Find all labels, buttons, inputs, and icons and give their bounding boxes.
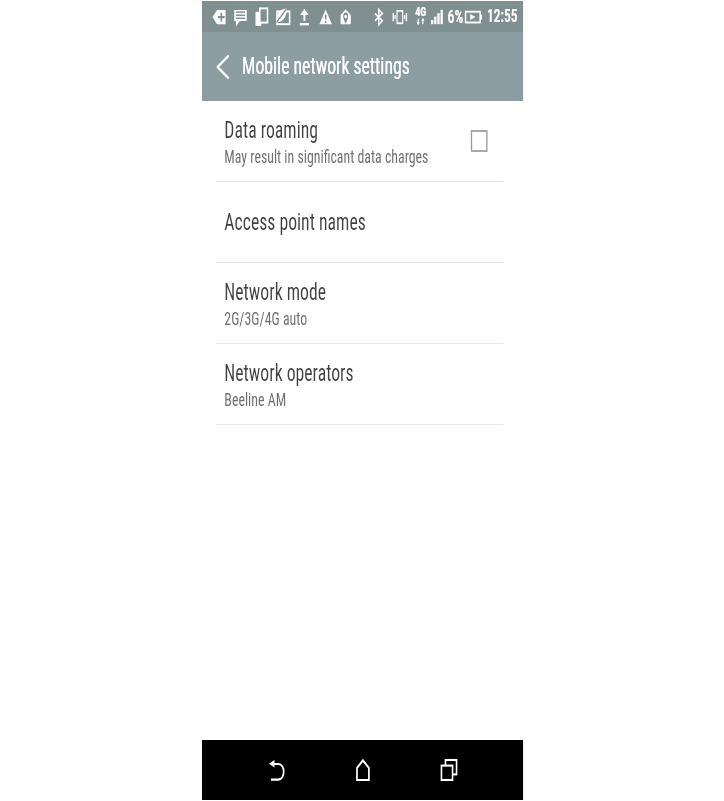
staticText: Data roaming <box>224 117 318 144</box>
button[interactable]: Home <box>320 740 406 800</box>
staticText: 6% <box>448 6 464 27</box>
button[interactable]: Back <box>234 740 320 800</box>
staticText: 12:55 <box>487 6 518 27</box>
button[interactable]: Access point names <box>202 182 523 262</box>
staticText: Network mode <box>224 279 327 306</box>
staticText: Beeline AM <box>224 389 287 410</box>
staticText: Network operators <box>224 360 354 387</box>
button[interactable]: Data roaming checkbox <box>464 101 495 181</box>
staticText: May result in significant data charges <box>224 146 429 167</box>
button[interactable]: Network mode <box>202 263 523 343</box>
staticText: 4G <box>415 4 427 19</box>
button[interactable]: Network operators <box>202 344 523 424</box>
button[interactable]: Navigate up <box>207 32 238 101</box>
button[interactable]: Recent apps <box>406 740 492 800</box>
staticText: 2G/3G/4G auto <box>224 308 307 329</box>
staticText: Mobile network settings <box>242 53 410 80</box>
button[interactable]: Data roaming <box>202 101 523 181</box>
staticText: Access point names <box>224 209 366 236</box>
